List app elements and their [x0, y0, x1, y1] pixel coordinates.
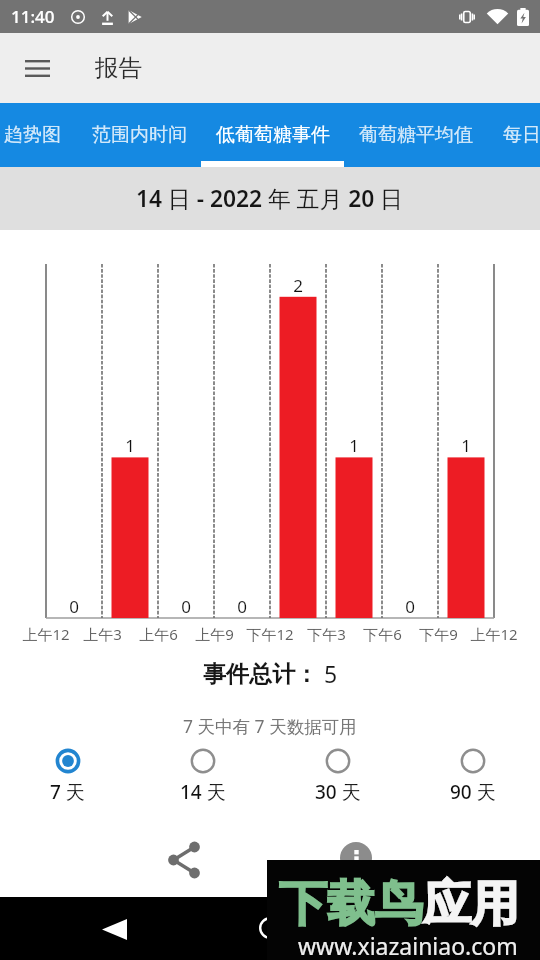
staticText: 14 天 [180, 779, 226, 805]
button[interactable]: Share [160, 836, 208, 884]
staticText: 11:40 [11, 5, 55, 28]
staticText: 下午12 [246, 624, 294, 644]
staticText: 0 [405, 595, 415, 618]
button[interactable]: 葡萄糖平均值 [344, 103, 487, 167]
staticText: 上午9 [195, 624, 234, 644]
staticText: 下午9 [419, 624, 458, 644]
staticText: 下载鸟 [279, 874, 423, 934]
staticText: 上午6 [139, 624, 178, 644]
staticText: 上午12 [22, 624, 70, 644]
staticText: 2 [293, 274, 303, 297]
staticText: 趋势图 [4, 123, 61, 147]
button[interactable]: Open navigation menu [13, 44, 61, 92]
staticText: 7 天中有 7 天数据可用 [183, 714, 357, 738]
staticText: 报告 [95, 53, 142, 83]
button[interactable]: 14 天 [135, 747, 270, 805]
staticText: 14 日 - 2022 年 五月 20 日 [136, 183, 404, 214]
staticText: 7 天 [50, 779, 85, 805]
button[interactable]: 90 天 [405, 747, 540, 805]
staticText: 下午6 [363, 624, 402, 644]
staticText: 下午3 [307, 624, 346, 644]
staticText: 葡萄糖平均值 [359, 123, 473, 147]
button[interactable]: 趋势图 [0, 103, 76, 167]
button[interactable]: 低葡萄糖事件 [201, 103, 344, 167]
staticText: 每日图 [503, 123, 540, 147]
button[interactable]: 7 天 [0, 747, 135, 805]
button[interactable]: Back [92, 907, 137, 952]
staticText: www.xiazainiao.com [298, 930, 518, 960]
staticText: 上午12 [470, 624, 518, 644]
button[interactable]: Home [247, 905, 292, 950]
staticText: 0 [237, 595, 247, 618]
button[interactable]: 30 天 [270, 747, 405, 805]
staticText: 事件总计： [203, 660, 318, 689]
staticText: 5 [318, 658, 338, 689]
staticText: 1 [125, 434, 135, 457]
staticText: 范围内时间 [92, 123, 187, 147]
button[interactable]: 范围内时间 [76, 103, 202, 167]
button[interactable]: 每日图 [487, 103, 540, 167]
staticText: 应用 [423, 874, 519, 934]
staticText: 30 天 [315, 779, 361, 805]
staticText: 0 [181, 595, 191, 618]
button[interactable]: More options [340, 842, 372, 874]
staticText: 0 [69, 595, 79, 618]
staticText: 上午3 [83, 624, 122, 644]
staticText: 低葡萄糖事件 [216, 123, 330, 147]
staticText: 1 [349, 434, 359, 457]
staticText: 90 天 [450, 779, 496, 805]
staticText: 1 [461, 434, 471, 457]
